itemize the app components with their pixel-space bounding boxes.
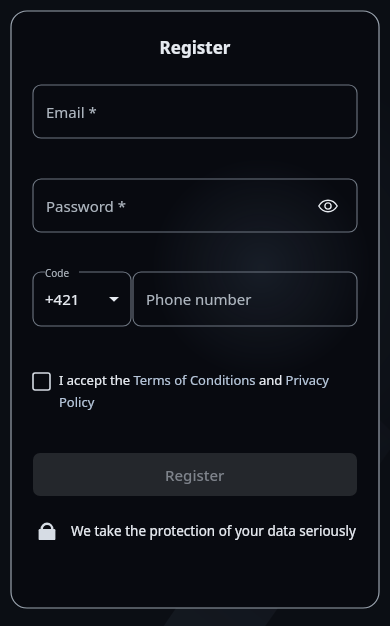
- button[interactable]: Password *: [33, 179, 357, 232]
- button[interactable]: Email *: [33, 85, 357, 138]
- staticText: Phone number: [146, 289, 252, 309]
- button[interactable]: Register: [33, 453, 357, 496]
- button[interactable]: I accept the Terms of Conditions and Pri…: [33, 371, 357, 411]
- button[interactable]: Code: [33, 272, 131, 326]
- button[interactable]: Phone number: [133, 272, 357, 326]
- staticText: I accept the Terms of Conditions and Pri…: [59, 371, 357, 411]
- staticText: Password *: [46, 196, 127, 216]
- staticText: We take the protection of your data seri…: [71, 522, 356, 540]
- button[interactable]: Show password: [311, 189, 345, 223]
- staticText: Register: [165, 465, 225, 485]
- staticText: Email *: [46, 102, 97, 122]
- staticText: +421: [45, 289, 80, 309]
- staticText: Register: [11, 36, 379, 59]
- staticText: Code: [45, 266, 70, 280]
